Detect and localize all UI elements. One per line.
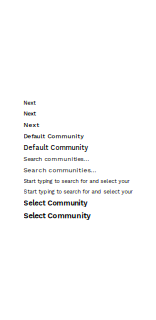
staticText: Next: [23, 110, 35, 117]
staticText: Default Community: [23, 144, 88, 151]
staticText: Search communities...: [23, 155, 89, 162]
staticText: Next: [23, 100, 35, 106]
staticText: Start typing to search for and select yo…: [23, 188, 132, 195]
staticText: Start typing to search for and select yo…: [23, 178, 129, 184]
staticText: Search communities...: [23, 166, 96, 174]
staticText: Select Community: [23, 211, 90, 220]
staticText: Select Community: [23, 199, 87, 207]
staticText: Default Community: [23, 132, 83, 140]
staticText: Next: [23, 121, 39, 128]
